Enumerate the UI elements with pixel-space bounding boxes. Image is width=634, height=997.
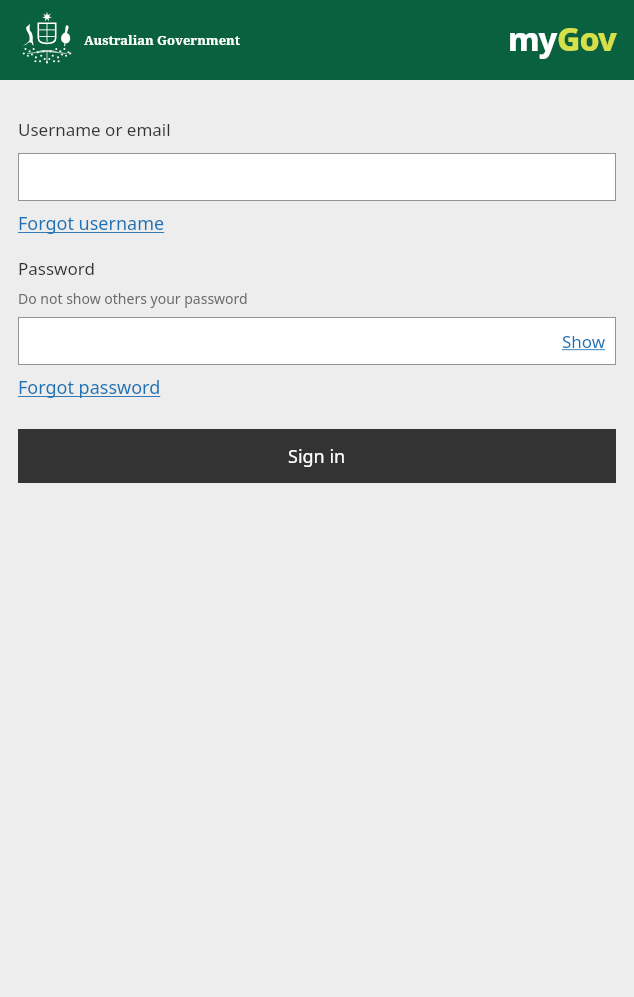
staticText: my <box>508 17 557 61</box>
button[interactable] <box>18 153 616 201</box>
staticText: Forgot username <box>18 211 165 236</box>
button[interactable]: Sign in <box>18 429 616 483</box>
staticText: Show <box>562 330 606 353</box>
staticText: Password <box>18 257 95 280</box>
staticText: Australian Government <box>84 31 241 49</box>
staticText: Sign in <box>288 444 346 469</box>
staticText: Gov <box>557 17 616 61</box>
button[interactable]: Show <box>18 317 616 365</box>
staticText: Username or email <box>18 118 171 141</box>
button[interactable]: Show <box>560 328 608 355</box>
button[interactable]: Forgot password <box>18 374 161 401</box>
other: Australian Coat of Arms <box>18 12 76 68</box>
staticText: Do not show others your password <box>18 289 248 308</box>
staticText: Forgot password <box>18 375 161 400</box>
button[interactable]: Forgot username <box>18 210 165 237</box>
